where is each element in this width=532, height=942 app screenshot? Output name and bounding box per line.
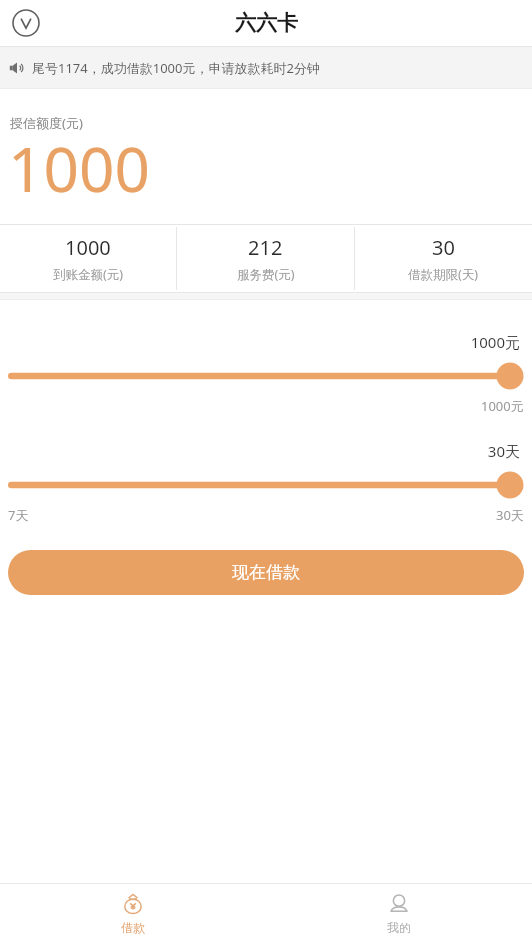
staticText: 我的 xyxy=(387,920,411,935)
staticText: 现在借款 xyxy=(232,562,300,583)
staticText: 到账金额(元) xyxy=(53,266,124,283)
staticText: 服务费(元) xyxy=(237,266,295,283)
staticText: 1000元 xyxy=(481,397,524,415)
button[interactable]: 1000 xyxy=(0,225,176,292)
staticText: 授信额度(元) xyxy=(10,114,83,132)
staticText: 1000元 xyxy=(0,332,520,352)
staticText: 借款 xyxy=(121,920,145,935)
staticText: 212 xyxy=(248,234,283,261)
staticText: 尾号1174，成功借款1000元，申请放款耗时2分钟 xyxy=(32,59,320,77)
button[interactable] xyxy=(0,362,532,390)
button[interactable]: 借款 xyxy=(0,884,266,942)
button[interactable] xyxy=(0,471,532,499)
staticText: 六六卡 xyxy=(235,10,298,36)
button[interactable]: Brand logo xyxy=(8,5,44,41)
staticText: 30天 xyxy=(496,506,524,524)
staticText: 借款期限(天) xyxy=(408,266,479,283)
button[interactable]: 尾号1174，成功借款1000元，申请放款耗时2分钟 xyxy=(0,47,532,88)
button[interactable]: 我的 xyxy=(266,884,532,942)
button[interactable]: 30 xyxy=(355,225,532,292)
staticText: 30 xyxy=(432,234,455,261)
button[interactable]: 现在借款 xyxy=(8,550,524,595)
staticText: 30天 xyxy=(0,441,520,461)
staticText: 1000 xyxy=(8,126,150,210)
staticText: 1000 xyxy=(65,234,111,261)
staticText: 7天 xyxy=(8,506,29,524)
button[interactable]: 212 xyxy=(177,225,354,292)
